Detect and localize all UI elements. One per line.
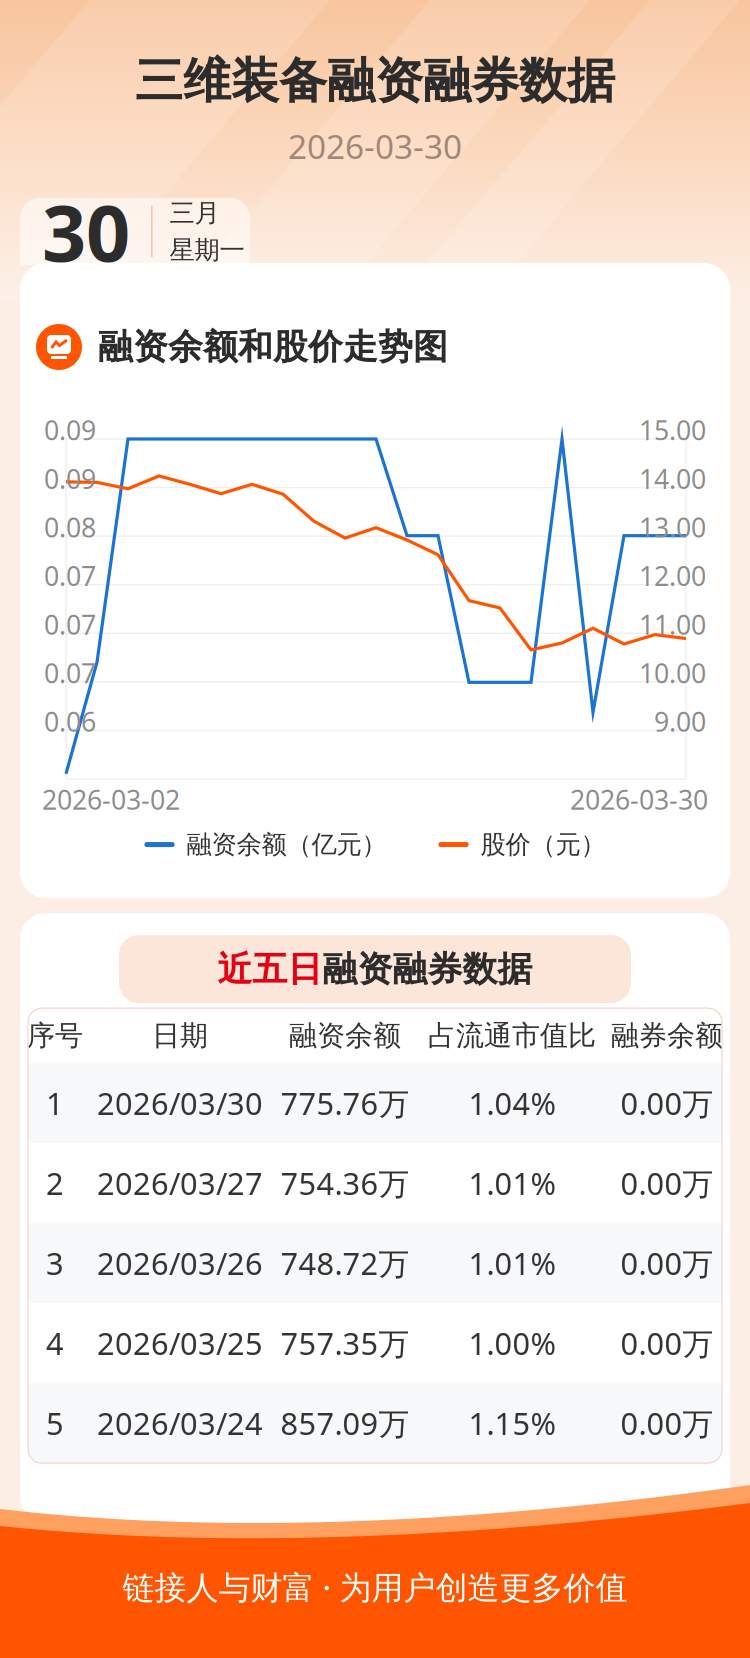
staticText: 2026-03-30 [288,124,462,168]
staticText: 0.00万 [620,1403,713,1443]
staticText: 序号 [27,1018,83,1053]
staticText: 近五日 [217,948,322,990]
staticText: 0.00万 [620,1323,713,1363]
staticText: 融资余额 [289,1018,401,1053]
staticText: 1.15% [468,1403,555,1443]
staticText: 857.09万 [280,1403,409,1443]
staticText: 融资余额和股价走势图 [98,326,448,368]
staticText: 融资余额（亿元） [186,829,386,860]
staticText: 2026/03/24 [97,1403,263,1443]
staticText: 3 [46,1243,64,1283]
staticText: 三维装备融资融券数据 [135,51,615,110]
staticText: 0.07 [44,558,96,593]
staticText: 0.07 [44,607,96,642]
staticText: 1.01% [468,1243,555,1283]
staticText: 0.00万 [620,1243,713,1283]
staticText: 9.00 [654,704,706,739]
staticText: 30 [42,180,130,283]
staticText: 融券余额 [611,1018,723,1053]
staticText: 1.04% [468,1083,555,1123]
staticText: 0.08 [44,509,96,545]
staticText: 0.06 [44,704,96,739]
staticText: 0.00万 [620,1163,713,1203]
staticText: 754.36万 [280,1163,409,1203]
staticText: 15.00 [639,412,706,448]
staticText: 748.72万 [280,1243,409,1283]
staticText: 星期一 [170,234,245,266]
staticText: 2026/03/27 [97,1163,263,1203]
staticText: 链接人与财富 · 为用户创造更多价值 [122,1565,627,1608]
staticText: 0.00万 [620,1083,713,1123]
staticText: 775.76万 [280,1083,409,1123]
staticText: 14.00 [639,461,706,496]
staticText: 2026-03-02 [42,782,180,817]
staticText: 2026-03-30 [570,782,708,817]
staticText: 融资融券数据 [322,948,532,990]
staticText: 2026/03/26 [97,1243,263,1283]
staticText: 10.00 [639,655,706,691]
staticText: 股价（元） [480,829,605,860]
staticText: 757.35万 [280,1323,409,1363]
staticText: 三月 [170,197,220,228]
staticText: 0.09 [44,461,96,496]
staticText: 11.00 [639,607,706,642]
staticText: 0.07 [44,655,96,691]
staticText: 2026/03/30 [97,1083,263,1123]
staticText: 1 [46,1083,64,1123]
staticText: 日期 [152,1018,208,1053]
staticText: 1.00% [468,1323,555,1363]
staticText: 占流通市值比 [428,1018,596,1053]
staticText: 12.00 [639,558,706,593]
staticText: 5 [46,1403,64,1443]
staticText: 2 [46,1163,64,1203]
staticText: 1.01% [468,1163,555,1203]
staticText: 2026/03/25 [97,1323,263,1363]
staticText: 4 [46,1323,64,1363]
staticText: 0.09 [44,412,96,448]
staticText: 13.00 [639,509,706,545]
